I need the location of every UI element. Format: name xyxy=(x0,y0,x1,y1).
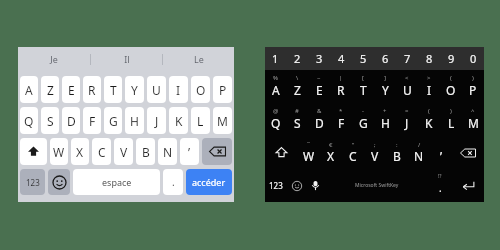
button[interactable]: > xyxy=(418,70,440,103)
button[interactable]: G xyxy=(104,107,122,134)
button[interactable]: = xyxy=(396,103,418,136)
button[interactable]: X xyxy=(71,138,89,165)
button[interactable]: O xyxy=(191,76,210,103)
staticText: € xyxy=(329,141,333,149)
staticText: ) xyxy=(450,107,452,115)
button[interactable]: | xyxy=(330,70,352,103)
button[interactable]: D xyxy=(62,107,80,134)
button[interactable]: \ xyxy=(286,70,308,103)
staticText: . xyxy=(439,181,442,195)
button[interactable]: [ xyxy=(352,70,374,103)
button[interactable]: Il xyxy=(91,47,162,71)
button[interactable]: + xyxy=(374,103,396,136)
button[interactable]: 0 xyxy=(462,47,484,70)
button[interactable]: B xyxy=(136,138,155,165)
staticText: 9 xyxy=(448,51,455,66)
button[interactable]: ’ xyxy=(180,138,199,165)
button[interactable]: ) xyxy=(440,103,462,136)
button[interactable]: . xyxy=(163,169,183,195)
button[interactable]: Z xyxy=(41,76,59,103)
button[interactable]: & xyxy=(308,103,330,136)
staticText: E xyxy=(68,82,75,98)
button[interactable]: € xyxy=(320,136,342,169)
button[interactable]: ) xyxy=(462,70,484,103)
button[interactable]: / xyxy=(408,136,430,169)
button[interactable]: S xyxy=(41,107,59,134)
button[interactable]: R xyxy=(83,76,101,103)
button[interactable]: ( xyxy=(440,70,462,103)
staticText: Z xyxy=(294,82,301,98)
button[interactable]: 8 xyxy=(418,47,440,70)
button[interactable]: Emoji xyxy=(287,169,306,202)
button[interactable]: * xyxy=(330,103,352,136)
staticText: F xyxy=(338,115,345,131)
button[interactable]: 123 xyxy=(265,169,287,202)
button[interactable]: Le xyxy=(163,47,234,71)
button[interactable]: 3 xyxy=(308,47,330,70)
button[interactable]: A xyxy=(20,76,38,103)
button[interactable]: Emoji xyxy=(48,169,70,195)
staticText: S xyxy=(47,113,54,129)
button[interactable]: ( xyxy=(418,103,440,136)
button[interactable]: V xyxy=(114,138,133,165)
button[interactable]: espace xyxy=(73,169,160,195)
button[interactable]: Voice input xyxy=(306,169,325,202)
button[interactable]: Shift xyxy=(20,138,47,165)
button[interactable]: ’ xyxy=(430,136,452,169)
button[interactable]: M xyxy=(213,107,232,134)
button[interactable]: - xyxy=(352,103,374,136)
button[interactable]: E xyxy=(62,76,80,103)
button[interactable]: 1 xyxy=(265,47,286,70)
button[interactable]: Shift xyxy=(265,136,298,169)
button[interactable]: H xyxy=(125,107,144,134)
staticText: # xyxy=(295,107,299,115)
staticText: L xyxy=(197,113,204,129)
button[interactable]: T xyxy=(104,76,122,103)
staticText: H xyxy=(130,113,139,129)
button[interactable]: 6 xyxy=(374,47,396,70)
button[interactable]: U xyxy=(147,76,166,103)
staticText: K xyxy=(175,113,183,129)
button[interactable]: Q xyxy=(20,107,38,134)
button[interactable]: ~ xyxy=(308,70,330,103)
button[interactable]: accéder xyxy=(186,169,232,195)
button[interactable]: < xyxy=(396,70,418,103)
button[interactable]: 4 xyxy=(330,47,352,70)
button[interactable]: F xyxy=(83,107,101,134)
button[interactable]: ; xyxy=(364,136,386,169)
staticText: Z xyxy=(47,82,54,98)
button[interactable]: : xyxy=(386,136,408,169)
button[interactable]: % xyxy=(265,70,286,103)
button[interactable]: # xyxy=(286,103,308,136)
button[interactable]: 2 xyxy=(286,47,308,70)
button[interactable]: L xyxy=(191,107,210,134)
button[interactable]: Je xyxy=(18,47,90,71)
staticText: O xyxy=(196,82,206,98)
staticText: I xyxy=(176,82,181,98)
button[interactable]: ¯ xyxy=(298,136,320,169)
button[interactable]: 5 xyxy=(352,47,374,70)
button[interactable]: 7 xyxy=(396,47,418,70)
button[interactable]: Backspace xyxy=(202,138,232,165)
button[interactable]: Backspace xyxy=(452,136,484,169)
button[interactable]: C xyxy=(92,138,111,165)
button[interactable]: 123 xyxy=(20,169,45,195)
staticText: J xyxy=(405,115,409,131)
button[interactable]: " xyxy=(342,136,364,169)
button[interactable]: 9 xyxy=(440,47,462,70)
button[interactable]: P xyxy=(213,76,232,103)
button[interactable]: K xyxy=(169,107,188,134)
button[interactable]: ] xyxy=(374,70,396,103)
button[interactable]: Microsoft SwiftKey xyxy=(325,169,429,202)
staticText: / xyxy=(418,141,421,149)
button[interactable]: W xyxy=(50,138,68,165)
button[interactable]: I xyxy=(169,76,188,103)
button[interactable]: ^ xyxy=(462,103,484,136)
button[interactable]: N xyxy=(158,138,177,165)
button[interactable]: @ xyxy=(265,103,286,136)
button[interactable]: J xyxy=(147,107,166,134)
button[interactable]: !? xyxy=(429,169,451,202)
button[interactable]: Enter xyxy=(451,169,484,202)
button[interactable]: Y xyxy=(125,76,144,103)
staticText: R xyxy=(88,82,96,98)
